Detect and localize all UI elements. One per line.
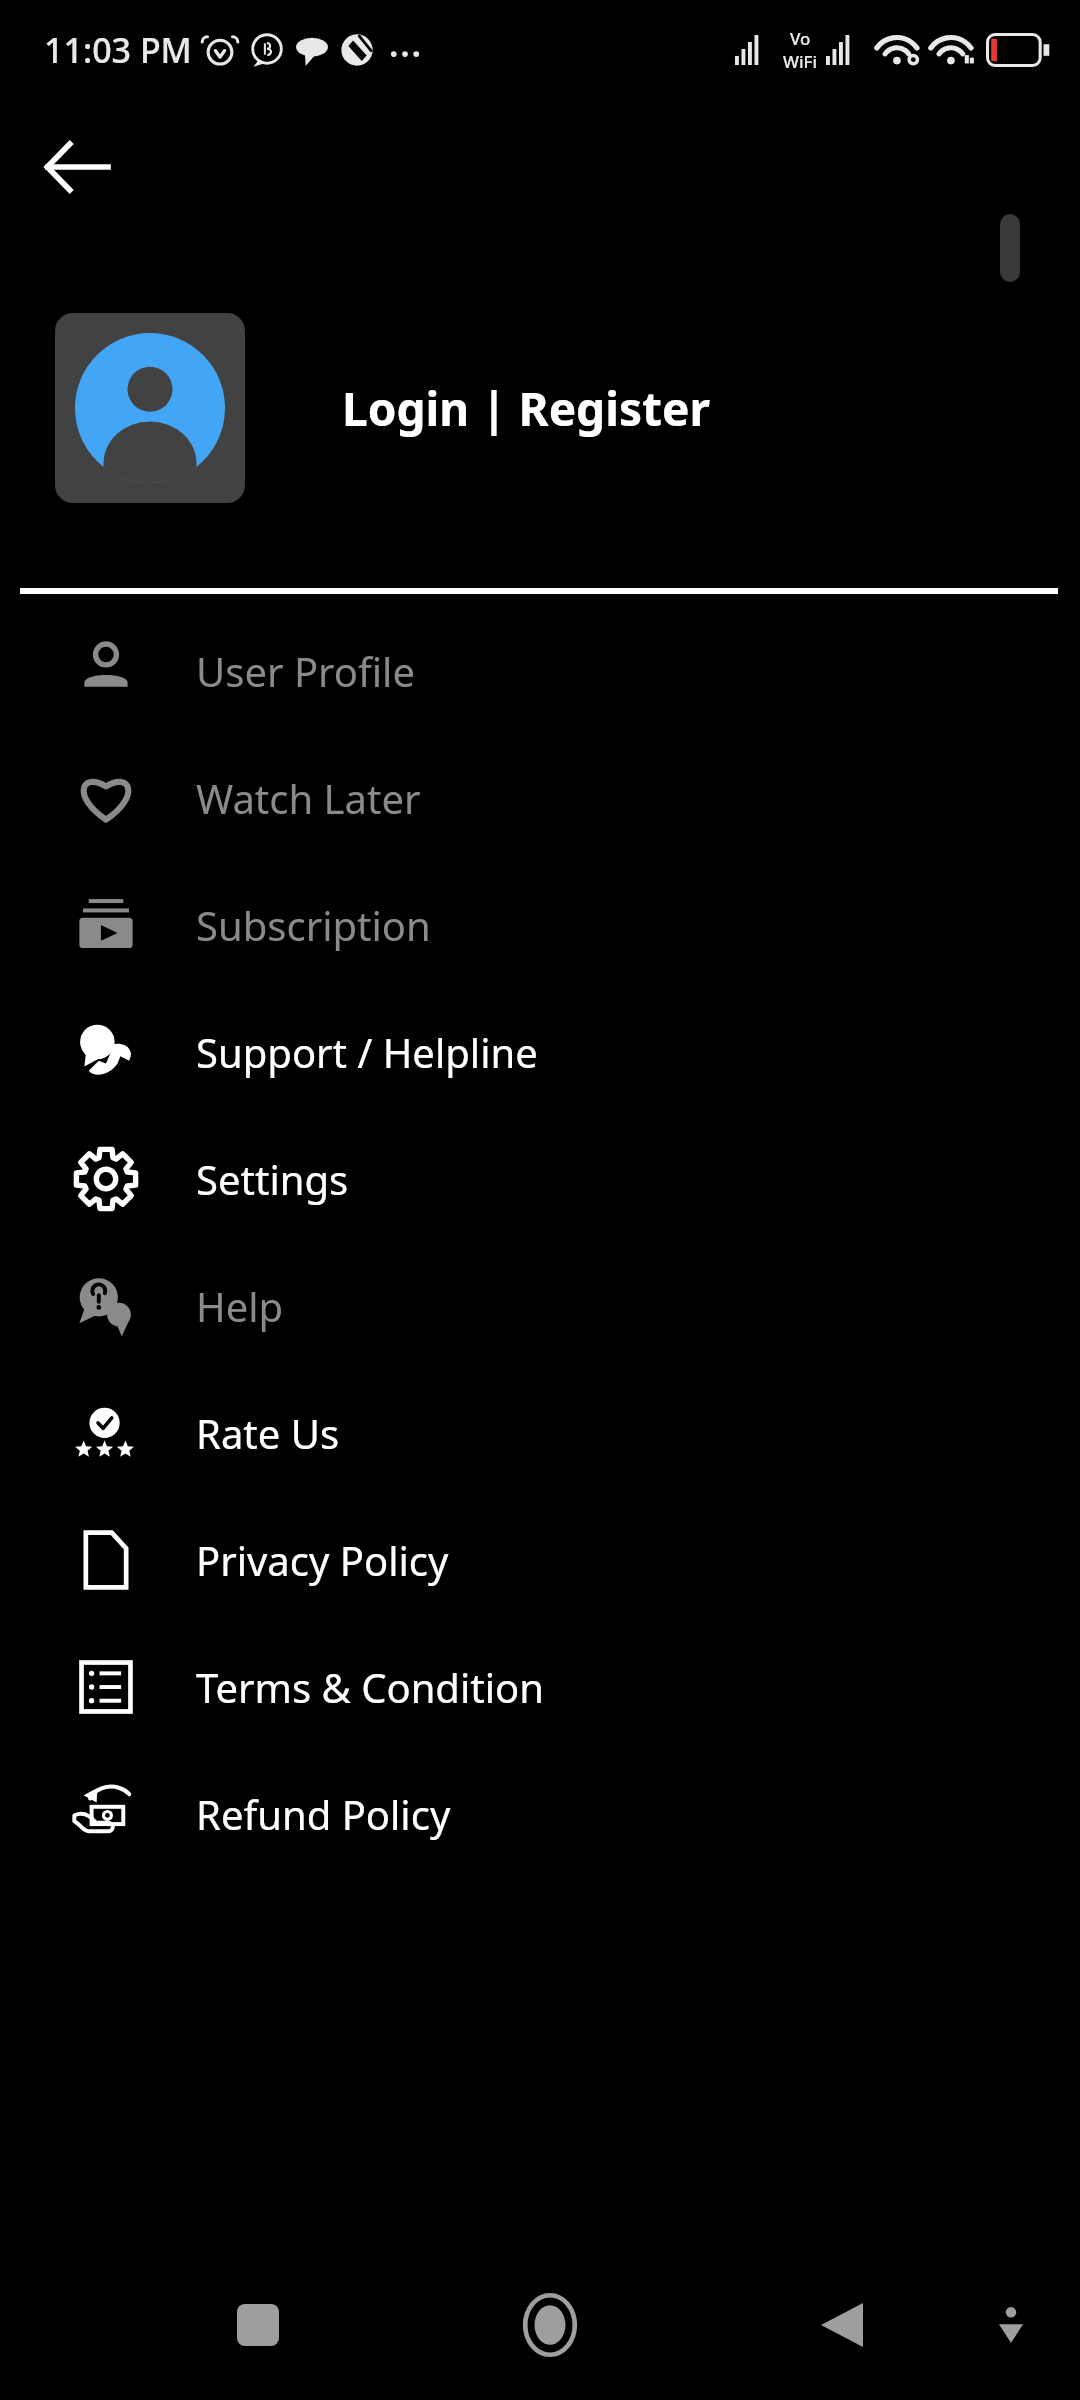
staticText: 11:03 PM — [44, 27, 192, 73]
staticText: Privacy Policy — [196, 1533, 449, 1587]
button[interactable]: Home — [498, 2273, 602, 2377]
button[interactable]: Back — [794, 2277, 890, 2373]
button[interactable]: Login | Register — [0, 313, 1080, 503]
button[interactable]: Privacy Policy — [0, 1496, 1080, 1623]
button[interactable]: Support / Helpline — [0, 988, 1080, 1115]
button[interactable]: Settings — [0, 1115, 1080, 1242]
staticText: Help — [196, 1279, 284, 1333]
button[interactable]: Help — [0, 1242, 1080, 1369]
button[interactable]: Refund Policy — [0, 1750, 1080, 1877]
button[interactable]: Back — [22, 112, 132, 222]
staticText: Vo — [790, 27, 811, 50]
button[interactable]: Subscription — [0, 861, 1080, 988]
button[interactable]: Recents — [210, 2277, 306, 2373]
button[interactable]: Terms & Condition — [0, 1623, 1080, 1750]
staticText: Rate Us — [196, 1406, 340, 1460]
staticText: Login | Register — [342, 377, 711, 440]
staticText: Support / Helpline — [196, 1025, 538, 1079]
button[interactable]: Watch Later — [0, 734, 1080, 861]
staticText: Terms & Condition — [196, 1660, 544, 1714]
staticText: Watch Later — [196, 771, 421, 825]
staticText: Settings — [196, 1152, 349, 1206]
staticText: User Profile — [196, 644, 415, 698]
staticText: WiFi — [783, 50, 818, 73]
staticText: Subscription — [196, 898, 431, 952]
button[interactable]: User Profile — [0, 607, 1080, 734]
button[interactable]: Hide navigation bar — [966, 2280, 1056, 2370]
button[interactable]: Rate Us — [0, 1369, 1080, 1496]
staticText: Refund Policy — [196, 1787, 451, 1841]
